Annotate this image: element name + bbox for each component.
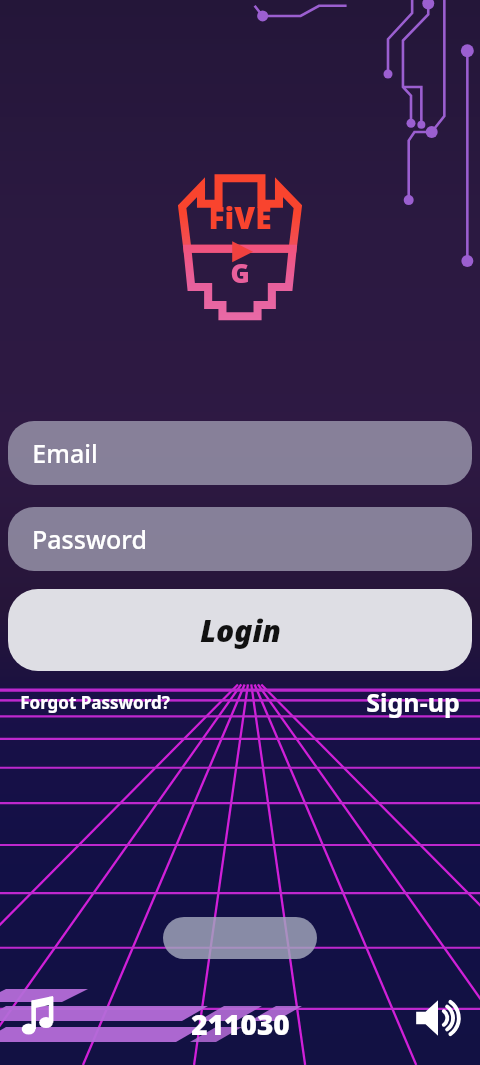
button[interactable]: Password (8, 507, 472, 571)
button[interactable]: Forgot Password? (20, 691, 170, 714)
staticText: 211030 (191, 1005, 290, 1043)
staticText: G (230, 255, 250, 290)
button[interactable]: Sign-up (366, 685, 460, 719)
button[interactable]: Login (8, 589, 472, 671)
staticText: Email (32, 436, 98, 470)
staticText: Sign-up (366, 685, 460, 719)
staticText: Forgot Password? (20, 691, 170, 714)
button[interactable]: Email (8, 421, 472, 485)
staticText: Password (32, 522, 147, 556)
staticText: Login (200, 610, 281, 651)
staticText: FiVE (208, 197, 272, 238)
button[interactable]: Play (163, 917, 317, 959)
button[interactable]: Sound (412, 992, 464, 1044)
button[interactable]: Music (18, 995, 64, 1041)
